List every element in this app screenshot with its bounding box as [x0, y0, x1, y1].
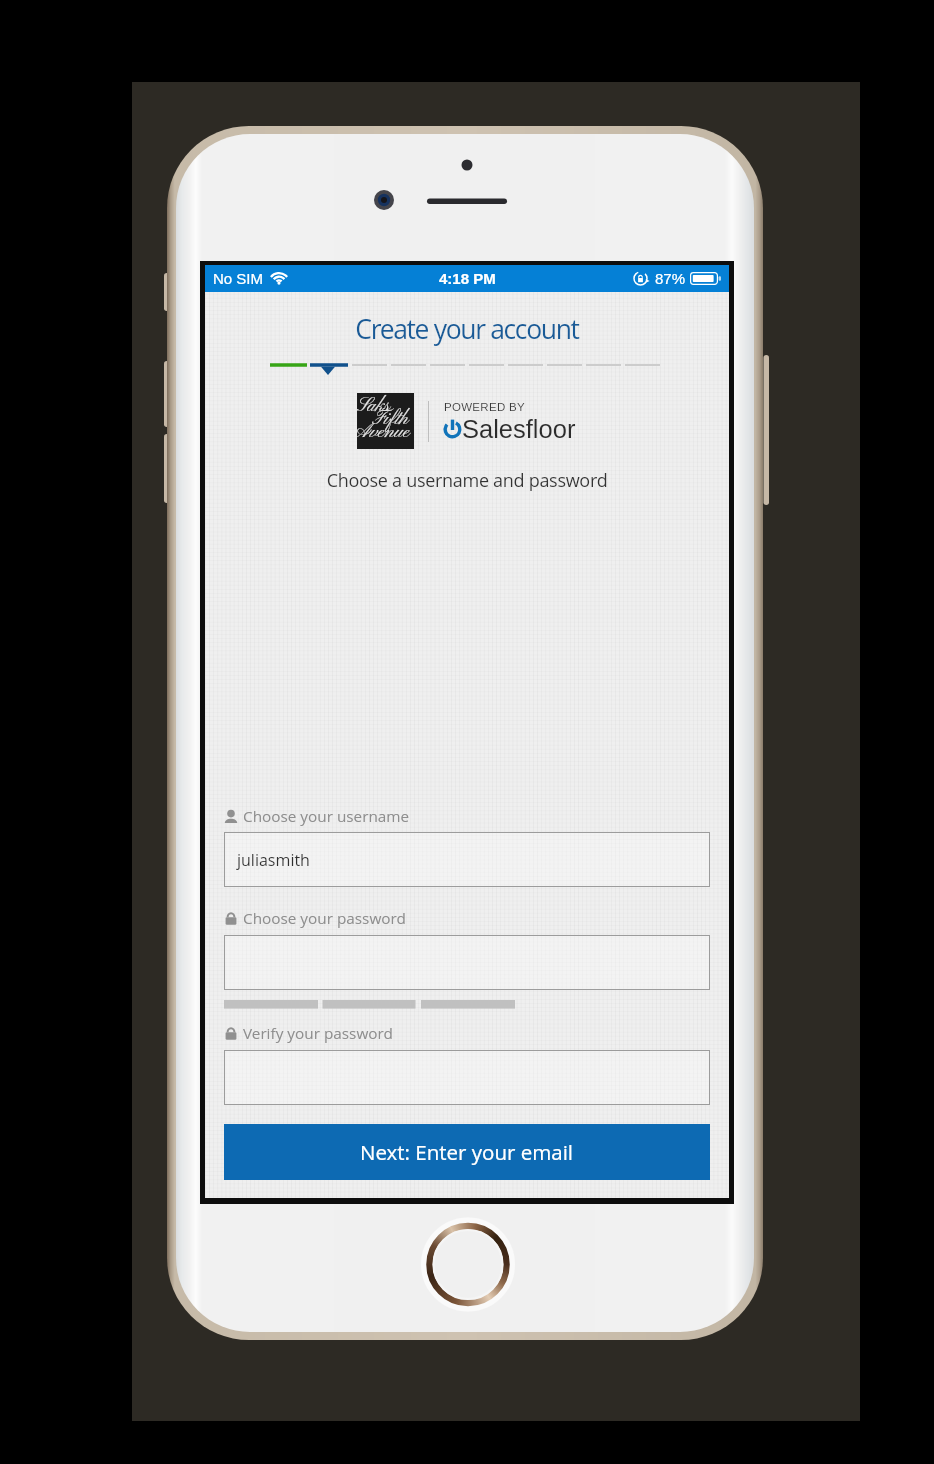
other: Salesfloor logo: [443, 419, 462, 438]
staticText: Salesfloor: [462, 415, 576, 443]
staticText: Avenue: [357, 420, 410, 445]
staticText: Create your account: [205, 311, 729, 347]
staticText: POWERED BY: [444, 401, 525, 414]
other: Rotation lock: [633, 271, 648, 286]
staticText: 87%: [655, 270, 686, 287]
staticText: 4:18 PM: [439, 270, 496, 287]
staticText: Choose a username and password: [205, 468, 729, 493]
staticText: Fifth: [372, 407, 409, 432]
button[interactable]: Choose your password: [224, 935, 710, 990]
other: Wi-Fi signal: [270, 270, 288, 288]
button[interactable]: Choose your username: [224, 832, 710, 887]
staticText: Verify your password: [243, 1023, 393, 1043]
staticText: Choose your password: [243, 908, 406, 928]
staticText: No SIM: [213, 270, 264, 287]
button[interactable]: Verify your password: [224, 1050, 710, 1105]
staticText: Choose your username: [243, 806, 410, 826]
staticText: Next: Enter your email: [360, 1138, 574, 1166]
staticText: Saks: [357, 394, 390, 419]
other: Saks Fifth Avenue: [357, 393, 414, 449]
other: Battery 87 percent: [690, 272, 721, 285]
button[interactable]: Next: Enter your email: [224, 1124, 710, 1180]
staticText: juliasmith: [237, 849, 310, 871]
